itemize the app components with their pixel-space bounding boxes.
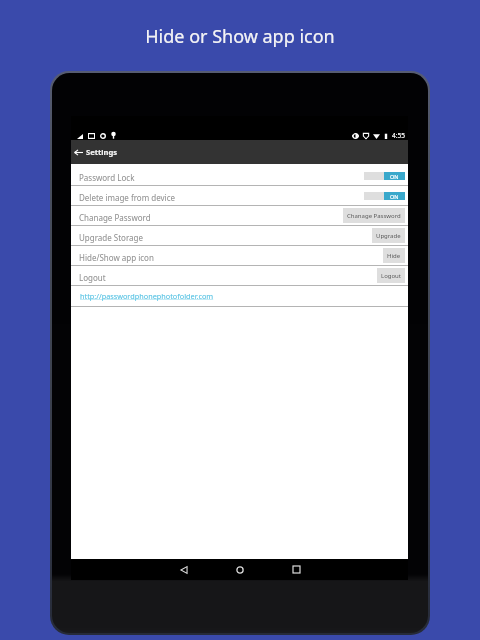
button[interactable]: Back bbox=[156, 559, 212, 580]
staticText: ON bbox=[390, 193, 399, 200]
button[interactable]: Back bbox=[71, 140, 86, 164]
button[interactable]: Upgrade bbox=[372, 228, 405, 243]
staticText: Chanage Password bbox=[347, 212, 401, 220]
staticText: Hide/Show app icon bbox=[79, 252, 154, 263]
button[interactable]: Upgrade Storage bbox=[71, 226, 408, 246]
staticText: Settings bbox=[86, 147, 118, 157]
staticText: Hide bbox=[387, 252, 401, 260]
button[interactable]: Logout bbox=[377, 268, 405, 283]
staticText: 4:55 bbox=[392, 131, 405, 140]
staticText: ON bbox=[390, 173, 399, 180]
staticText: Logout bbox=[381, 272, 401, 280]
button[interactable]: Password lock, on bbox=[364, 172, 405, 180]
button[interactable]: Chanage Password bbox=[343, 208, 405, 223]
staticText: Upgrade bbox=[376, 232, 401, 240]
button[interactable]: Delete image from device, on bbox=[364, 192, 405, 200]
button[interactable]: Password Lock bbox=[71, 166, 408, 186]
staticText: Logout bbox=[79, 272, 106, 283]
button[interactable]: Delete image from device bbox=[71, 186, 408, 206]
staticText: Hide or Show app icon bbox=[145, 24, 335, 49]
staticText: Password Lock bbox=[79, 172, 135, 183]
button[interactable]: http://passwordphonephotofolder.com bbox=[80, 291, 214, 301]
button[interactable]: Recent apps bbox=[268, 559, 324, 580]
button[interactable]: Logout bbox=[71, 266, 408, 286]
staticText: Upgrade Storage bbox=[79, 232, 144, 243]
button[interactable]: Chanage Password bbox=[71, 206, 408, 226]
button[interactable]: Hide bbox=[383, 248, 405, 263]
staticText: Delete image from device bbox=[79, 192, 175, 203]
button[interactable]: Hide/Show app icon bbox=[71, 246, 408, 266]
staticText: Chanage Password bbox=[79, 212, 151, 223]
button[interactable]: Home bbox=[212, 559, 268, 580]
